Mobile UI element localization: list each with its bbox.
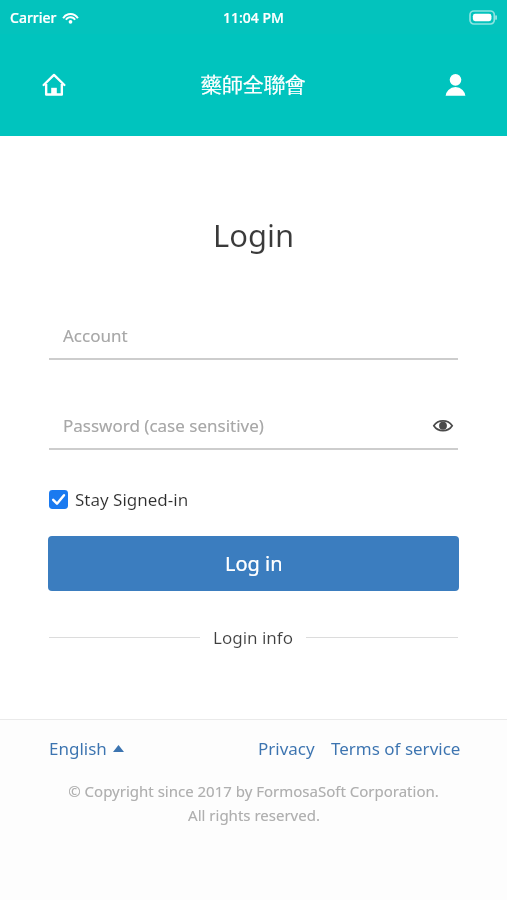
- button[interactable]: Terms of service: [331, 737, 461, 760]
- button[interactable]: Show password: [428, 410, 458, 440]
- staticText: 藥師全聯會: [201, 72, 306, 98]
- staticText: English: [49, 737, 107, 760]
- button[interactable]: English: [49, 737, 124, 760]
- button[interactable]: Account: [435, 65, 475, 105]
- staticText: Stay Signed-in: [75, 488, 189, 511]
- staticText: All rights reserved.: [188, 805, 320, 825]
- button[interactable]: Log in: [48, 536, 459, 591]
- button[interactable]: Privacy: [258, 737, 315, 760]
- button[interactable]: Home: [34, 65, 74, 105]
- staticText: Log in: [225, 550, 283, 577]
- staticText: Account: [63, 324, 128, 347]
- button[interactable]: Password (case sensitive): [49, 406, 458, 450]
- staticText: 11:04 PM: [223, 8, 284, 27]
- button[interactable]: Stay Signed-in: [49, 488, 189, 511]
- staticText: Password (case sensitive): [63, 414, 264, 437]
- staticText: Carrier: [10, 8, 57, 27]
- staticText: © Copyright since 2017 by FormosaSoft Co…: [68, 781, 439, 801]
- staticText: Login: [0, 214, 507, 256]
- button[interactable]: Account: [49, 316, 458, 360]
- button[interactable]: Login info: [213, 626, 293, 649]
